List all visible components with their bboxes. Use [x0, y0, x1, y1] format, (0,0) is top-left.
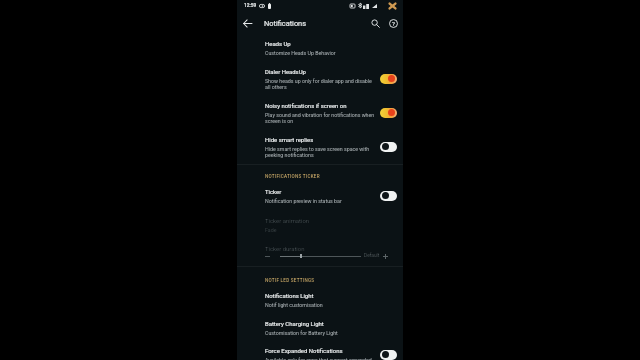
button[interactable]: Off: [380, 350, 397, 360]
staticText: Ticker animation: [265, 217, 310, 224]
staticText: Heads Up: [265, 40, 291, 47]
button[interactable]: [237, 62, 403, 96]
staticText: all others: [265, 84, 287, 90]
staticText: NOTIF LED SETTINGS: [265, 278, 315, 283]
staticText: NOTIFICATIONS TICKER: [265, 174, 320, 179]
button[interactable]: [237, 182, 403, 210]
staticText: Notifications: [264, 19, 307, 28]
staticText: Force Expanded Notifications: [265, 347, 343, 354]
staticText: Play sound and vibration for notificatio…: [265, 112, 375, 118]
staticText: Customisation for Battery Light: [265, 330, 338, 336]
button[interactable]: Ticker duration slider: [237, 250, 403, 262]
button[interactable]: [237, 34, 403, 62]
button[interactable]: On: [380, 108, 397, 118]
staticText: Ticker duration: [265, 245, 305, 252]
button[interactable]: Search: [367, 14, 384, 33]
staticText: Battery Charging Light: [265, 320, 324, 327]
staticText: Customize Heads Up Behavior: [265, 50, 336, 56]
staticText: screen is on: [265, 118, 294, 124]
staticText: Fade: [265, 227, 277, 233]
staticText: Default: [364, 253, 380, 259]
button[interactable]: [237, 341, 403, 360]
staticText: Noisy notifications if screen on: [265, 102, 347, 109]
staticText: ?: [392, 20, 395, 27]
staticText: Dialer HeadsUp: [265, 68, 306, 75]
staticText: Ticker: [265, 188, 282, 195]
staticText: Notifications Light: [265, 292, 314, 299]
staticText: Notif light customisation: [265, 302, 323, 308]
button[interactable]: Off: [380, 191, 397, 201]
button[interactable]: [237, 211, 403, 239]
staticText: peeking notifications: [265, 152, 314, 158]
button[interactable]: Off: [380, 142, 397, 152]
staticText: Hide smart replies: [265, 136, 314, 143]
staticText: Available only for apps that support exp…: [265, 357, 372, 360]
staticText: Show heads up only for dialer app and di…: [265, 78, 372, 84]
button[interactable]: Back: [239, 14, 256, 33]
staticText: Notification preview in status bar: [265, 198, 342, 204]
button[interactable]: [237, 286, 403, 314]
staticText: Hide smart replies to save screen space …: [265, 146, 370, 152]
button[interactable]: On: [380, 74, 397, 84]
button[interactable]: [237, 130, 403, 164]
button[interactable]: [237, 314, 403, 342]
button[interactable]: [237, 96, 403, 130]
button[interactable]: Help: [385, 14, 402, 33]
staticText: 12:59: [244, 3, 257, 9]
